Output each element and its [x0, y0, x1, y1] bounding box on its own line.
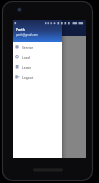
staticText: Parth	[16, 28, 25, 32]
button[interactable]: Load	[13, 52, 62, 62]
button[interactable]: Logout	[13, 72, 62, 82]
button[interactable]	[13, 20, 62, 42]
staticText: Load	[22, 55, 30, 59]
staticText: parth@gmail.com	[16, 33, 38, 37]
button[interactable]: Leave	[13, 62, 62, 72]
staticText: Service	[22, 45, 34, 49]
staticText: Logout	[22, 75, 34, 79]
staticText: Leave	[22, 65, 32, 69]
button[interactable]: Service	[13, 42, 62, 52]
